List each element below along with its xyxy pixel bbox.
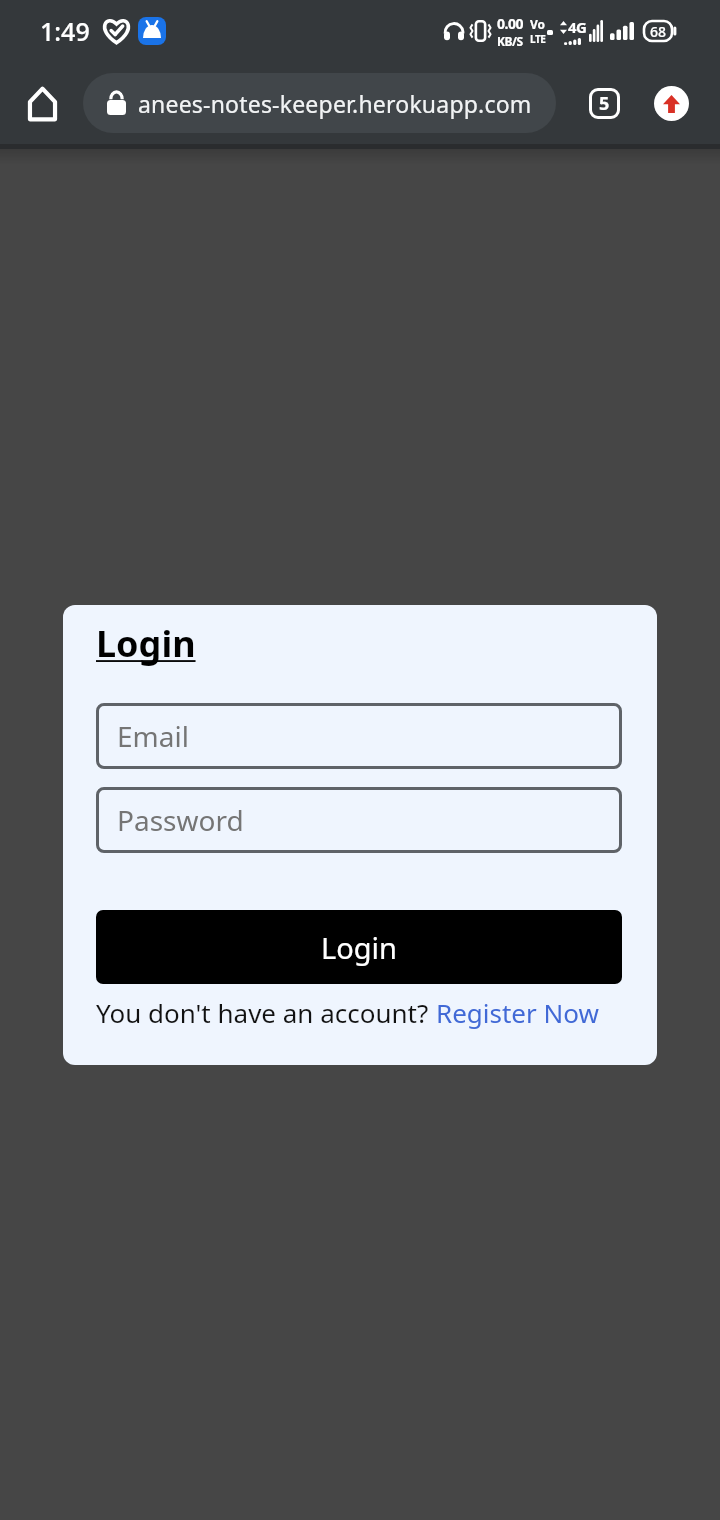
staticText: KB/S	[497, 33, 523, 49]
staticText: 5	[599, 91, 610, 116]
button[interactable]: Password	[96, 787, 622, 853]
button[interactable]	[18, 79, 66, 127]
staticText: Password	[117, 801, 244, 839]
staticText: 1:49	[40, 14, 90, 48]
button[interactable]: Login	[96, 910, 622, 984]
staticText: Login	[321, 928, 397, 967]
staticText: LTE	[530, 32, 546, 46]
button[interactable]	[654, 86, 689, 121]
staticText: 0.00	[497, 14, 523, 33]
staticText: Vo	[530, 16, 546, 32]
staticText: Login	[96, 619, 196, 668]
staticText: anees-notes-keeper.herokuapp.com	[138, 88, 532, 119]
staticText: Email	[117, 717, 189, 755]
staticText: You don't have an account?	[96, 995, 436, 1030]
button[interactable]: anees-notes-keeper.herokuapp.com	[83, 73, 556, 133]
staticText: 68	[650, 22, 667, 41]
button[interactable]: Register Now	[436, 995, 599, 1030]
staticText: 4G	[568, 17, 587, 37]
button[interactable]: Email	[96, 703, 622, 769]
button[interactable]: 5	[589, 88, 620, 119]
